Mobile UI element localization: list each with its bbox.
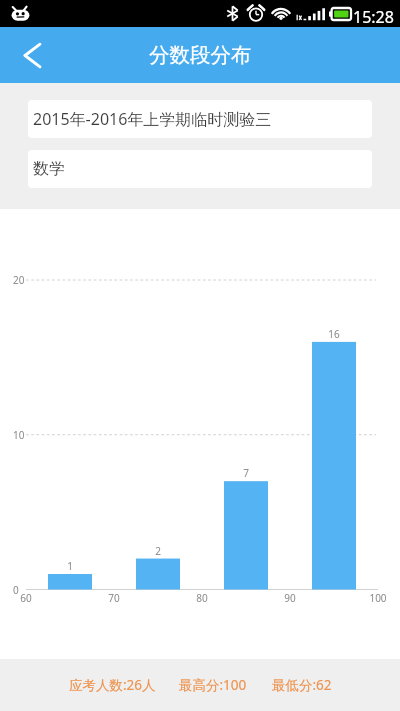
staticText: 80 <box>196 591 208 605</box>
staticText: 15:28 <box>353 6 394 28</box>
staticText: 0 <box>13 583 19 597</box>
staticText: 7 <box>243 466 249 480</box>
staticText: 2 <box>155 544 161 558</box>
button[interactable]: Back <box>0 27 65 83</box>
staticText: 2015年-2016年上学期临时测验三 <box>33 108 272 130</box>
staticText: 90 <box>284 591 296 605</box>
staticText: 应考人数:26人 <box>69 676 156 694</box>
button[interactable]: 2015年-2016年上学期临时测验三 <box>28 100 372 138</box>
staticText: 分数段分布 <box>149 42 252 68</box>
staticText: 10 <box>13 428 25 442</box>
staticText: 最低分:62 <box>272 676 332 694</box>
staticText: 16 <box>328 327 340 341</box>
button[interactable]: 数学 <box>28 150 372 188</box>
staticText: 数学 <box>33 159 65 179</box>
staticText: 20 <box>13 273 25 287</box>
staticText: 1 <box>67 559 73 573</box>
staticText: 60 <box>20 591 32 605</box>
staticText: 最高分:100 <box>179 676 247 694</box>
staticText: 100 <box>369 591 387 605</box>
staticText: 70 <box>108 591 120 605</box>
